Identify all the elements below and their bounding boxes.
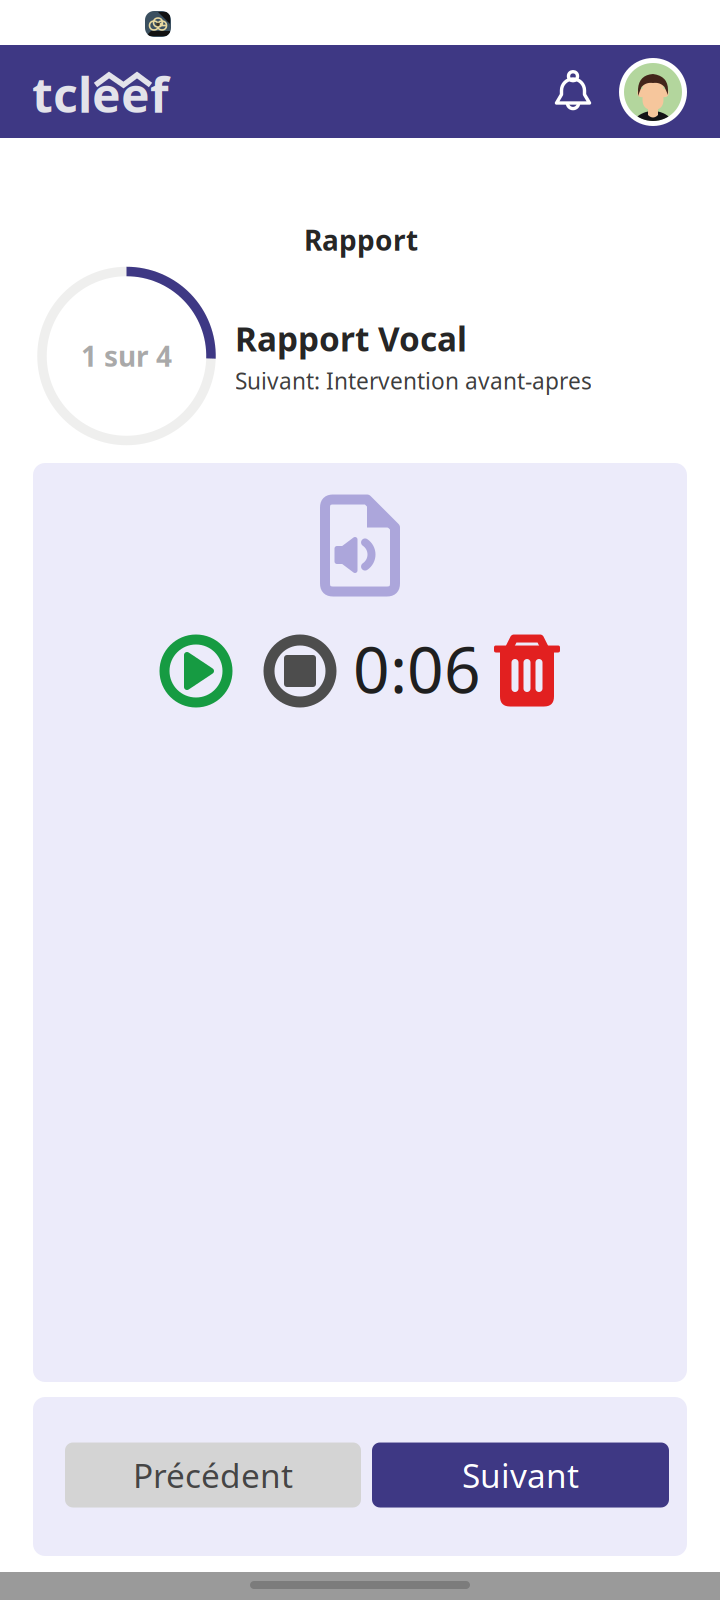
staticText: Suivant (462, 1453, 579, 1497)
staticText: 0:06 (353, 626, 481, 711)
staticText: 1 sur 4 (81, 337, 172, 375)
staticText: tcleef (32, 62, 169, 126)
staticText: Précédent (133, 1453, 293, 1497)
button[interactable]: Profile (619, 58, 687, 126)
staticText: Suivant: Intervention avant-apres (235, 366, 592, 396)
staticText: Rapport Vocal (235, 316, 467, 361)
button[interactable]: Delete recording (493, 632, 561, 708)
button[interactable]: Précédent (65, 1442, 361, 1507)
button[interactable]: Suivant (372, 1442, 669, 1507)
button[interactable]: Notifications (552, 68, 594, 114)
button[interactable]: Play recording (158, 633, 234, 709)
button[interactable]: Stop recording (262, 633, 338, 709)
staticText: Rapport (304, 221, 418, 259)
